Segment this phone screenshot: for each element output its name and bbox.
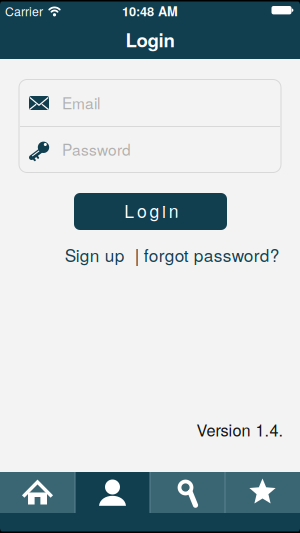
staticText: 10:48 AM [122,2,178,20]
staticText: Carrier [5,2,43,20]
staticText: Login [125,26,174,53]
staticText: Email [62,91,100,113]
staticText: Password [62,138,131,160]
staticText: Sign up | forgot password? [65,242,280,267]
staticText: Version 1.4. [196,418,283,441]
staticText: Login [124,198,179,223]
